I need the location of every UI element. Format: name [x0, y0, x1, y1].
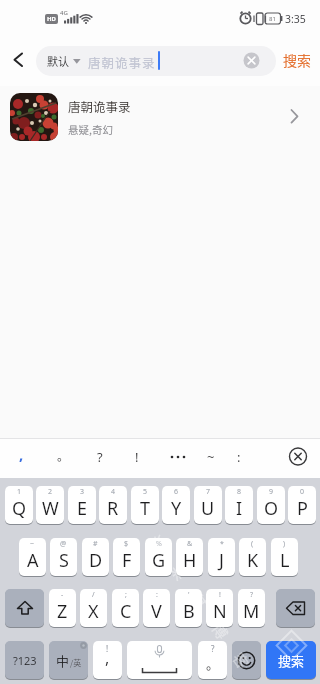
staticText: ? [250, 590, 254, 600]
staticText: C [120, 599, 132, 624]
staticText: & [187, 539, 193, 549]
staticText: HD [47, 15, 56, 23]
button[interactable] [276, 589, 315, 627]
button[interactable] [6, 47, 30, 73]
staticText: V [151, 599, 162, 624]
staticText: 搜索 [278, 651, 305, 670]
button[interactable]: 。 [52, 439, 74, 475]
staticText: 2 [48, 487, 53, 497]
staticText: N [213, 599, 227, 624]
button[interactable]: : [143, 589, 170, 627]
staticText: # [93, 539, 98, 549]
button[interactable]: 唐朝诡事录 [0, 86, 320, 148]
button[interactable]: , [10, 439, 32, 475]
button[interactable]: ' [175, 589, 202, 627]
staticText: $ [124, 539, 129, 549]
button[interactable]: ( [239, 538, 266, 576]
staticText: ! [219, 590, 221, 600]
staticText: 3:35 [285, 12, 306, 26]
staticText: 米某某博客 [145, 530, 267, 684]
button[interactable]: 0 [288, 486, 316, 524]
staticText: 81 [269, 15, 276, 23]
staticText: E [77, 496, 88, 521]
button[interactable]: ?123 [5, 641, 44, 679]
staticText: P [297, 496, 308, 521]
staticText: Q [12, 496, 27, 521]
staticText: ' [188, 590, 190, 600]
button[interactable]: ~ [19, 538, 46, 576]
staticText: ! [135, 448, 139, 466]
staticText: , [19, 444, 24, 464]
staticText: ? [97, 448, 103, 466]
button[interactable]: ! [126, 439, 148, 475]
staticText: ~ [30, 539, 35, 549]
button[interactable]: # [82, 538, 109, 576]
staticText: 搜索 [283, 50, 311, 70]
staticText: A [27, 548, 39, 573]
button[interactable]: 搜索 [266, 641, 316, 679]
button[interactable]: ? [89, 439, 111, 475]
button[interactable]: 5 [131, 486, 159, 524]
staticText: ! [106, 643, 109, 654]
staticText: R [107, 496, 119, 521]
button[interactable] [164, 439, 192, 475]
staticText: 5 [143, 487, 148, 497]
button[interactable]: 7 [194, 486, 222, 524]
staticText: /英 [70, 657, 82, 669]
staticText: 9 [269, 487, 274, 497]
button[interactable]: ; [112, 589, 139, 627]
staticText: L [280, 548, 290, 573]
staticText: Z [57, 599, 68, 624]
staticText: : [237, 448, 241, 466]
staticText: M [243, 599, 260, 624]
button[interactable]: * [208, 538, 235, 576]
button[interactable]: ~ [200, 439, 222, 475]
staticText: 8 [237, 487, 242, 497]
button[interactable] [232, 641, 261, 679]
staticText: I [236, 496, 243, 521]
button[interactable]: 4 [99, 486, 127, 524]
staticText: U [201, 496, 215, 521]
button[interactable]: 默认 [36, 46, 276, 76]
button[interactable]: : [228, 439, 250, 475]
staticText: 1 [17, 487, 22, 497]
staticText: W [42, 496, 59, 521]
staticText: 。 [57, 447, 70, 464]
button[interactable]: % [145, 538, 172, 576]
staticText: 7 [206, 487, 211, 497]
button[interactable]: ! [93, 641, 122, 679]
staticText: T [140, 496, 151, 521]
button[interactable] [5, 589, 44, 627]
staticText: 唐朝诡事录 [68, 97, 131, 115]
button[interactable]: 2 [36, 486, 64, 524]
button[interactable] [127, 641, 192, 679]
button[interactable]: ! [206, 589, 233, 627]
button[interactable]: ) [271, 538, 298, 576]
staticText: G [152, 548, 166, 573]
button[interactable]: 6 [162, 486, 190, 524]
staticText: ) [283, 539, 286, 549]
button[interactable]: 中 [49, 641, 88, 679]
staticText: : [156, 590, 158, 600]
staticText: ~ [207, 448, 215, 466]
button[interactable]: 9 [257, 486, 285, 524]
button[interactable]: ? [238, 589, 265, 627]
button[interactable]: 8 [225, 486, 253, 524]
staticText: J [219, 548, 224, 573]
button[interactable] [286, 444, 310, 468]
staticText: @ [60, 539, 67, 549]
button[interactable]: 3 [68, 486, 96, 524]
button[interactable]: ? [198, 641, 227, 679]
button[interactable]: @ [50, 538, 77, 576]
button[interactable]: / [80, 589, 107, 627]
button[interactable]: $ [113, 538, 140, 576]
button[interactable]: 搜索 [283, 50, 316, 72]
staticText: F [122, 548, 132, 573]
button[interactable]: - [49, 589, 76, 627]
staticText: O [264, 496, 279, 521]
staticText: H [183, 548, 197, 573]
staticText: Y [171, 496, 182, 521]
button[interactable]: 1 [5, 486, 33, 524]
button[interactable]: & [176, 538, 203, 576]
staticText: 0 [300, 487, 305, 497]
